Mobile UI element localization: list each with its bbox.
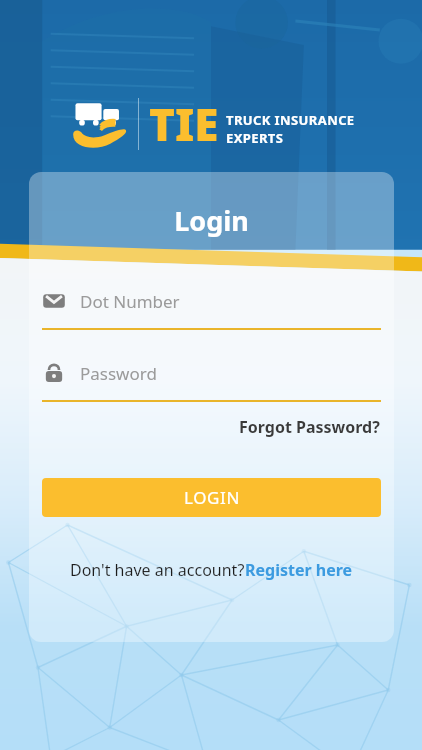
- staticText: LOGIN: [184, 486, 240, 509]
- button[interactable]: LOGIN: [42, 478, 381, 517]
- staticText: Password: [80, 362, 157, 385]
- button[interactable]: Register here: [245, 559, 353, 581]
- staticText: Dot Number: [80, 290, 180, 313]
- button[interactable]: Dot Number: [42, 284, 381, 330]
- staticText: TIE: [149, 94, 219, 154]
- staticText: Don't have an account?: [70, 559, 245, 581]
- staticText: EXPERTS: [226, 129, 284, 147]
- staticText: Login: [29, 202, 394, 239]
- staticText: Register here: [245, 559, 353, 581]
- staticText: TRUCK INSURANCE: [226, 111, 355, 129]
- button[interactable]: Forgot Password?: [29, 416, 380, 438]
- button[interactable]: Password: [42, 356, 381, 402]
- staticText: Forgot Password?: [239, 416, 380, 438]
